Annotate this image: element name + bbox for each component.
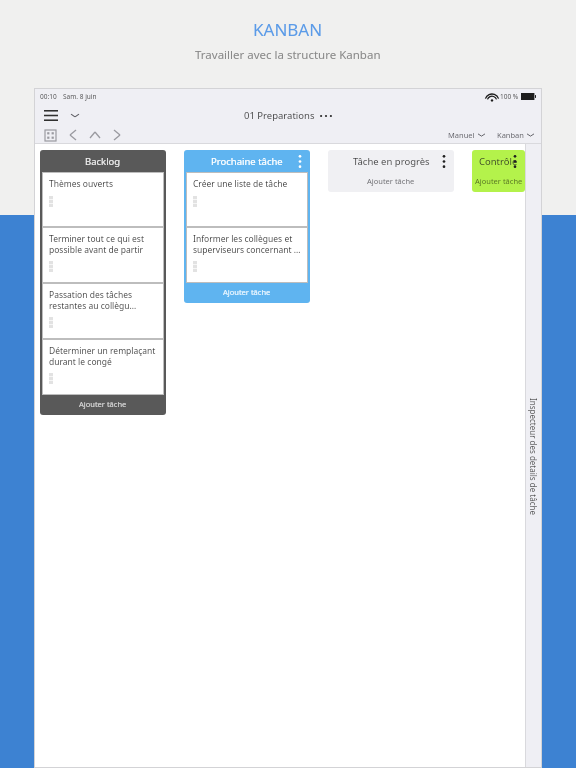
button[interactable]: Inspecteur des details de tâche <box>525 144 542 768</box>
button[interactable]: Afficher plus <box>67 107 83 123</box>
staticText: Informer les collègues et superviseurs c… <box>193 233 302 255</box>
staticText: Backlog <box>85 155 121 168</box>
staticText: Tâche en progrès <box>353 155 430 168</box>
button[interactable]: Manuel <box>448 130 485 140</box>
staticText: Terminer tout ce qui est possible avant … <box>49 233 158 255</box>
staticText: Prochaine tâche <box>211 155 283 168</box>
button[interactable]: Créer une liste de tâche <box>186 172 308 227</box>
staticText: 100 % <box>500 92 519 101</box>
staticText: Déterminer un remplaçant durant le congé <box>49 345 158 367</box>
button[interactable]: Passation des tâches restantes au collèg… <box>42 283 164 339</box>
staticText: Créer une liste de tâche <box>193 178 288 190</box>
staticText: Ajouter tâche <box>475 176 523 186</box>
staticText: Manuel <box>448 130 475 140</box>
staticText: KANBAN <box>253 18 323 41</box>
staticText: Travailler avec la structure Kanban <box>195 47 381 63</box>
staticText: 01 Preparations <box>244 109 315 122</box>
button[interactable]: 01 Preparations <box>244 109 332 122</box>
button[interactable]: Ajouter tâche <box>42 395 164 413</box>
staticText: 00:10 <box>40 92 57 101</box>
staticText: Ajouter tâche <box>223 287 271 297</box>
staticText: Passation des tâches restantes au collèg… <box>49 289 158 311</box>
button[interactable]: Kanban <box>497 130 534 140</box>
staticText: Ajouter tâche <box>79 399 127 409</box>
staticText: Sam. 8 juin <box>63 92 97 101</box>
button[interactable]: Précédent <box>66 128 80 142</box>
button[interactable]: Menu <box>42 106 60 124</box>
staticText: Inspecteur des details de tâche <box>528 398 539 515</box>
staticText: Kanban <box>497 130 524 140</box>
button[interactable]: Ajouter tâche <box>330 172 452 190</box>
button[interactable]: Ajouter tâche <box>474 172 523 190</box>
button[interactable]: Suivant <box>110 128 124 142</box>
button[interactable]: Monter <box>88 128 102 142</box>
button[interactable]: Thèmes ouverts <box>42 172 164 227</box>
button[interactable]: Options de colonne <box>292 153 308 169</box>
button[interactable]: Vue grille <box>42 127 58 143</box>
button[interactable]: Informer les collègues et superviseurs c… <box>186 227 308 283</box>
button[interactable]: Terminer tout ce qui est possible avant … <box>42 227 164 283</box>
button[interactable]: Déterminer un remplaçant durant le congé <box>42 339 164 395</box>
staticText: Contrôle <box>479 155 518 168</box>
staticText: Ajouter tâche <box>367 176 415 186</box>
button[interactable]: Options de colonne <box>507 153 523 169</box>
button[interactable]: Ajouter tâche <box>186 283 308 301</box>
staticText: Thèmes ouverts <box>49 178 113 190</box>
button[interactable]: Options de colonne <box>436 153 452 169</box>
